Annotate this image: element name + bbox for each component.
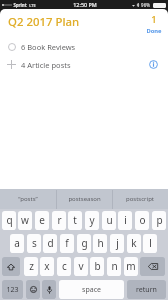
button[interactable]: o	[135, 211, 149, 230]
button[interactable]: postscript	[112, 189, 168, 209]
button[interactable]: p	[152, 211, 166, 230]
staticText: c	[62, 259, 67, 273]
button[interactable]: j	[110, 234, 124, 253]
staticText: v	[78, 259, 84, 273]
staticText: p	[156, 213, 163, 227]
button[interactable]: Shift	[2, 257, 20, 276]
staticText: Sprint	[13, 2, 27, 8]
button[interactable]: u	[102, 211, 116, 230]
staticText: space	[82, 285, 101, 295]
button[interactable]: Emoji	[26, 280, 40, 299]
button[interactable]: y	[85, 211, 99, 230]
button[interactable]: m	[124, 257, 138, 276]
staticText: b	[94, 259, 101, 273]
button[interactable]: z	[24, 257, 38, 276]
staticText: return	[136, 285, 157, 295]
staticText: g	[81, 236, 88, 250]
button[interactable]: s	[27, 234, 41, 253]
staticText: o	[139, 213, 146, 227]
staticText: LTE	[29, 3, 36, 8]
button[interactable]: t	[68, 211, 82, 230]
staticText: m	[126, 259, 136, 273]
staticText: s	[32, 236, 37, 250]
button[interactable]: a	[10, 234, 24, 253]
button[interactable]: return	[127, 280, 166, 299]
button[interactable]: k	[127, 234, 141, 253]
staticText: n	[111, 259, 118, 273]
button[interactable]: Backspace	[140, 257, 165, 276]
button[interactable]: w	[18, 211, 32, 230]
staticText: l	[149, 236, 152, 250]
staticText: t	[73, 213, 77, 227]
staticText: 123	[6, 285, 19, 295]
button[interactable]: e	[35, 211, 49, 230]
button[interactable]: space	[59, 280, 124, 299]
staticText: a	[14, 236, 20, 250]
button[interactable]: 6 Book Reviews	[0, 37, 168, 56]
button[interactable]: x	[40, 257, 54, 276]
button[interactable]: Dictate	[42, 280, 56, 299]
button[interactable]: h	[93, 234, 107, 253]
staticText: 6 Book Reviews	[21, 42, 76, 52]
staticText: “posts”	[18, 195, 38, 203]
staticText: f	[65, 236, 69, 250]
staticText: 96%	[141, 2, 150, 8]
button[interactable]: n	[107, 257, 121, 276]
staticText: j	[116, 236, 119, 250]
staticText: u	[106, 213, 113, 227]
button[interactable]: 123	[2, 280, 23, 299]
button[interactable]: 1	[142, 13, 166, 39]
button[interactable]: i	[118, 211, 132, 230]
staticText: d	[47, 236, 54, 250]
button[interactable]: Details	[147, 58, 160, 71]
staticText: Q2 2017 Plan	[8, 14, 80, 30]
button[interactable]: postseason	[56, 189, 112, 209]
button[interactable]: “posts”	[0, 189, 56, 209]
button[interactable]: 4 Article posts	[0, 55, 168, 74]
staticText: w	[21, 213, 29, 227]
button[interactable]: l	[143, 234, 157, 253]
button[interactable]: f	[60, 234, 74, 253]
button[interactable]: d	[43, 234, 57, 253]
staticText: 4 Article posts	[21, 60, 71, 70]
staticText: h	[97, 236, 104, 250]
staticText: 12:50 PM	[73, 1, 97, 8]
staticText: q	[6, 213, 13, 227]
button[interactable]: q	[2, 211, 16, 230]
staticText: x	[44, 259, 50, 273]
staticText: postseason	[68, 195, 101, 203]
button[interactable]: b	[90, 257, 104, 276]
staticText: postscript	[126, 195, 154, 203]
button[interactable]: g	[77, 234, 91, 253]
staticText: i	[124, 213, 127, 227]
staticText: r	[57, 213, 62, 227]
staticText: e	[39, 213, 45, 227]
button[interactable]: r	[52, 211, 66, 230]
button[interactable]: c	[57, 257, 71, 276]
button[interactable]: v	[74, 257, 88, 276]
staticText: k	[131, 236, 137, 250]
staticText: y	[89, 213, 95, 227]
staticText: z	[29, 259, 34, 273]
staticText: 1	[142, 13, 166, 26]
staticText: Done	[142, 27, 166, 35]
